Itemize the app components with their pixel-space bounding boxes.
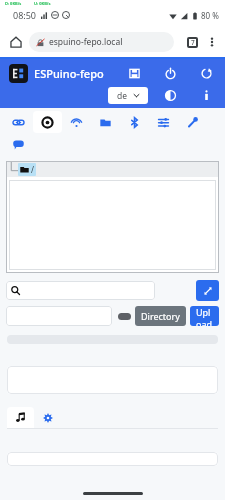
button[interactable]: Link — [4, 111, 33, 133]
button[interactable]: Save — [126, 65, 143, 82]
button[interactable]: Player — [7, 407, 34, 428]
button[interactable] — [7, 452, 218, 466]
button[interactable]: Messages — [4, 133, 33, 155]
staticText: D: 0KB/s — [5, 1, 22, 6]
button[interactable]: More options — [202, 32, 222, 52]
button[interactable] — [7, 366, 218, 394]
button[interactable]: Info — [198, 87, 215, 104]
button[interactable]: Toggle contrast — [162, 87, 179, 104]
button[interactable]: Expand — [196, 280, 219, 301]
button[interactable]: Upload — [190, 306, 219, 326]
button[interactable]: Directory — [135, 306, 186, 326]
button[interactable]: Home — [5, 31, 27, 53]
staticText: 08:50 — [13, 9, 37, 21]
button[interactable]: Power — [162, 65, 179, 82]
staticText: espuino-fepo.local — [49, 36, 123, 48]
button[interactable]: espuino-fepo.local — [29, 32, 174, 52]
button[interactable]: Equalizer — [149, 111, 178, 133]
button[interactable]: Tools — [178, 111, 207, 133]
button[interactable]: de — [108, 87, 148, 104]
button[interactable]: Files — [91, 111, 120, 133]
staticText: / — [31, 164, 34, 175]
button[interactable]: Tabs — [182, 32, 202, 52]
button[interactable]: WiFi — [62, 111, 91, 133]
button[interactable]: Status — [33, 111, 62, 133]
button[interactable] — [6, 281, 155, 300]
staticText: Directory — [141, 310, 180, 322]
staticText: ESPuino-fepo — [34, 66, 104, 81]
staticText: 7 — [191, 38, 195, 47]
staticText: Upload — [196, 306, 213, 326]
staticText: 80 % — [201, 10, 219, 21]
button[interactable]: Settings — [34, 407, 61, 428]
button[interactable] — [6, 306, 112, 326]
staticText: de — [117, 90, 128, 102]
staticText: U: 0KB/s — [34, 1, 51, 6]
button[interactable]: ESPuino-fepo — [9, 64, 104, 83]
button[interactable]: Toggle — [118, 313, 131, 320]
button[interactable]: Bluetooth — [120, 111, 149, 133]
button[interactable]: / — [18, 163, 36, 176]
button[interactable]: Reload — [198, 65, 215, 82]
